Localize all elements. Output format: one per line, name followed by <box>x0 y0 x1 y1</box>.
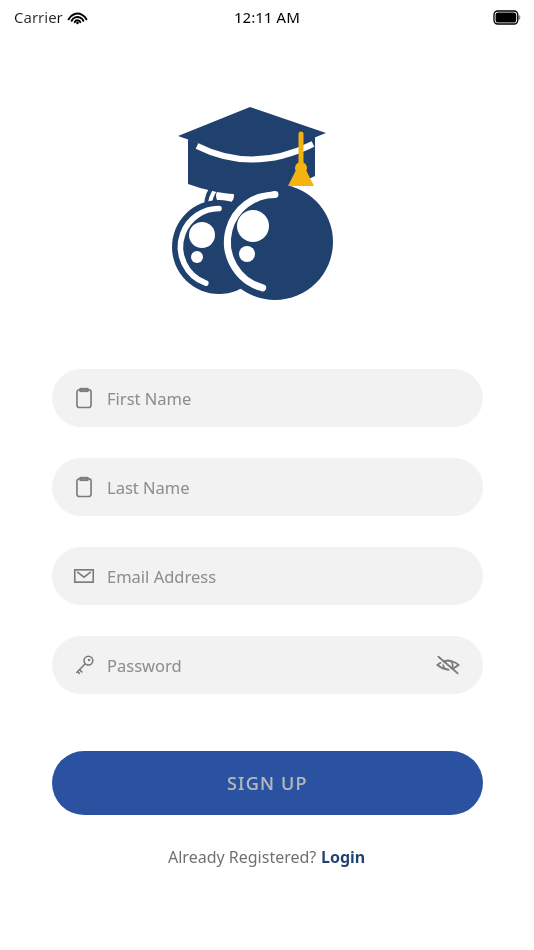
button[interactable]: Password <box>52 636 483 694</box>
button[interactable]: Login <box>321 846 366 868</box>
staticText: Login <box>321 846 366 868</box>
staticText: 12:11 AM <box>234 7 300 27</box>
staticText: Last Name <box>107 476 463 498</box>
button[interactable]: Last Name <box>52 458 483 516</box>
button[interactable]: Email Address <box>52 547 483 605</box>
button[interactable]: SIGN UP <box>52 751 483 815</box>
staticText: Already Registered? <box>168 846 321 868</box>
staticText: First Name <box>107 387 463 409</box>
staticText: Carrier <box>14 7 63 27</box>
staticText: Password <box>107 654 433 676</box>
button[interactable]: First Name <box>52 369 483 427</box>
staticText: Email Address <box>107 565 463 587</box>
staticText: SIGN UP <box>227 771 308 796</box>
button[interactable]: Show password <box>433 650 463 680</box>
